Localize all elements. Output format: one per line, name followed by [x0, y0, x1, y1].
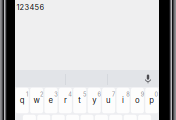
- button[interactable]: [37, 114, 51, 120]
- button[interactable]: 8: [116, 87, 130, 114]
- staticText: 123456: [16, 3, 44, 12]
- staticText: e: [48, 95, 53, 105]
- staticText: 1: [26, 91, 28, 98]
- staticText: p: [149, 95, 154, 105]
- button[interactable]: 0: [145, 87, 159, 114]
- staticText: 3: [54, 91, 57, 98]
- button[interactable]: Dictate: [141, 70, 155, 87]
- staticText: 5: [83, 91, 86, 98]
- button[interactable]: [65, 114, 80, 120]
- button[interactable]: [94, 114, 109, 120]
- staticText: 7: [112, 91, 115, 98]
- staticText: 2: [40, 91, 43, 98]
- button[interactable]: 2: [29, 87, 44, 114]
- button[interactable]: [80, 114, 94, 120]
- button[interactable]: [109, 114, 123, 120]
- button[interactable]: 5: [73, 87, 87, 114]
- staticText: r: [64, 95, 67, 105]
- staticText: y: [92, 95, 96, 105]
- button[interactable]: 3: [44, 87, 58, 114]
- staticText: o: [135, 95, 140, 105]
- staticText: 8: [126, 91, 129, 98]
- button[interactable]: 6: [87, 87, 101, 114]
- button[interactable]: 4: [58, 87, 73, 114]
- staticText: t: [78, 95, 81, 105]
- staticText: 6: [97, 91, 100, 98]
- button[interactable]: 9: [130, 87, 145, 114]
- staticText: i: [122, 95, 124, 105]
- button[interactable]: 7: [101, 87, 116, 114]
- staticText: q: [20, 95, 25, 105]
- staticText: 9: [141, 91, 144, 98]
- staticText: 0: [155, 91, 159, 98]
- button[interactable]: [22, 114, 37, 120]
- staticText: 4: [68, 91, 72, 98]
- staticText: u: [106, 95, 111, 105]
- button[interactable]: [137, 114, 152, 120]
- button[interactable]: 1: [15, 87, 29, 114]
- button[interactable]: [123, 114, 137, 120]
- button[interactable]: [51, 114, 65, 120]
- staticText: w: [34, 95, 40, 105]
